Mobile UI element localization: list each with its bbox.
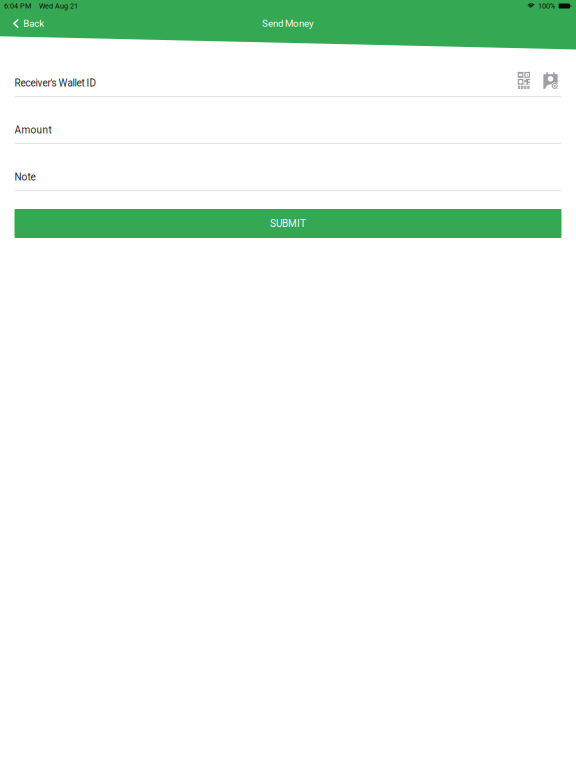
- staticText: Amount: [14, 124, 51, 136]
- staticText: Back: [23, 18, 44, 29]
- button[interactable]: Scan QR code: [516, 72, 532, 89]
- staticText: Wed Aug 21: [39, 2, 78, 10]
- button[interactable]: Back: [0, 14, 52, 33]
- button[interactable]: SUBMIT: [14, 209, 561, 238]
- staticText: 6:04 PM: [4, 2, 31, 10]
- staticText: 100%: [538, 2, 555, 10]
- staticText: Note: [14, 171, 35, 183]
- staticText: Send Money: [262, 18, 314, 29]
- staticText: SUBMIT: [270, 218, 306, 229]
- button[interactable]: Pick from contacts: [541, 72, 560, 89]
- staticText: Receiver's Wallet ID: [14, 77, 96, 89]
